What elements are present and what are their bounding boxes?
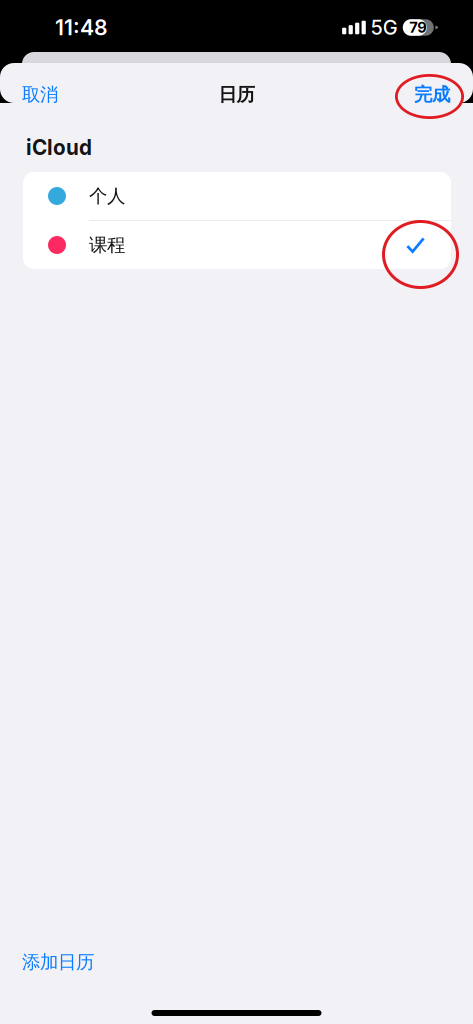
- staticText: 5G: [371, 15, 398, 40]
- staticText: 79: [409, 19, 427, 36]
- staticText: 取消: [22, 83, 58, 106]
- button[interactable]: 个人: [23, 172, 451, 220]
- staticText: 课程: [89, 233, 125, 257]
- staticText: 添加日历: [22, 950, 94, 974]
- button[interactable]: 添加日历: [0, 942, 116, 982]
- button[interactable]: 取消: [0, 72, 80, 116]
- button[interactable]: 课程: [23, 221, 451, 269]
- staticText: 完成: [414, 83, 450, 106]
- staticText: 个人: [89, 184, 125, 208]
- staticText: iCloud: [26, 135, 92, 160]
- staticText: 11:48: [55, 15, 108, 40]
- staticText: 日历: [218, 83, 254, 106]
- button[interactable]: 完成: [391, 72, 473, 116]
